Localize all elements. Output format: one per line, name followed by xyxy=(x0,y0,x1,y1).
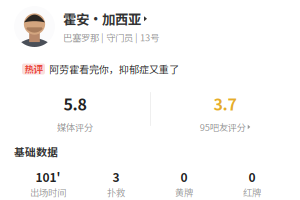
staticText: 101' xyxy=(35,168,60,185)
staticText: 出场时间 xyxy=(30,185,66,199)
staticText: 95吧友评分 xyxy=(200,120,246,134)
staticText: 热评 xyxy=(24,62,42,76)
staticText: 3 xyxy=(112,168,119,185)
staticText: 黄牌 xyxy=(175,185,193,199)
staticText: 基础数据 xyxy=(14,144,58,159)
staticText: 红牌 xyxy=(243,185,261,199)
button[interactable]: 霍安·加西亚 xyxy=(0,3,300,50)
staticText: 5.8 xyxy=(63,92,86,115)
staticText: 巴塞罗那 | 守门员 | 13号 xyxy=(63,30,159,44)
staticText: 扑救 xyxy=(107,185,125,199)
staticText: 阿劳霍看完你，抑郁症又重了 xyxy=(49,62,179,76)
staticText: 霍安·加西亚 xyxy=(63,9,141,28)
button[interactable]: 3.7 xyxy=(150,92,300,134)
button[interactable]: 热评 xyxy=(0,61,300,77)
staticText: 3.7 xyxy=(213,92,236,115)
staticText: 0 xyxy=(180,168,187,185)
staticText: 媒体评分 xyxy=(57,120,93,134)
staticText: 0 xyxy=(248,168,255,185)
